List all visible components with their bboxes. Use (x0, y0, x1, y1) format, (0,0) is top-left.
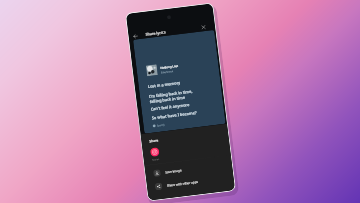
button[interactable]: Close (199, 23, 208, 32)
button[interactable]: Nothing Lost (133, 30, 226, 134)
staticText: Elderbrook (161, 69, 173, 74)
staticText: Share with other apps (167, 180, 198, 188)
staticText: I'm falling back in time, falling back i… (149, 88, 193, 104)
staticText: Share lyrics (145, 29, 166, 37)
staticText: Can't feel it anymore (150, 102, 190, 112)
staticText: Save image (165, 168, 182, 174)
staticText: So what have I become? (151, 110, 197, 121)
button[interactable]: Stories (148, 147, 162, 162)
staticText: Nothing Lost (160, 64, 178, 70)
staticText: Lost in a memory (148, 80, 181, 89)
button[interactable]: Save image (145, 157, 233, 181)
button[interactable]: Share with other apps (146, 171, 234, 195)
staticText: Stories (152, 158, 159, 161)
staticText: Spotify (157, 123, 165, 127)
staticText: Share (149, 138, 158, 143)
button[interactable]: Back (131, 32, 140, 41)
